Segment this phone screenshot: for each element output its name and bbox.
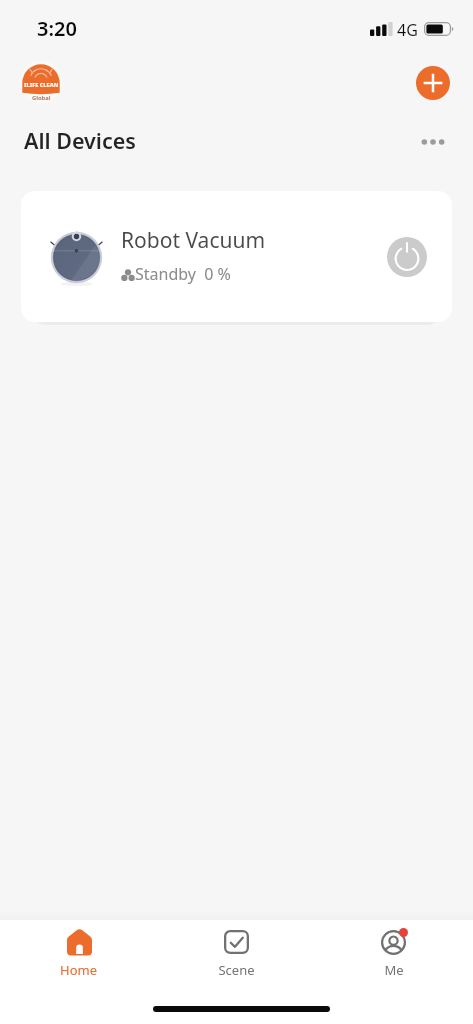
button[interactable]: Add device — [416, 66, 450, 100]
staticText: Me — [384, 961, 404, 979]
staticText: Home — [60, 961, 97, 979]
button[interactable]: Power — [387, 237, 427, 277]
button[interactable]: Home — [0, 920, 157, 979]
staticText: 4G — [397, 19, 418, 41]
staticText: All Devices — [24, 126, 136, 155]
staticText: ILIFE CLEAN — [24, 81, 59, 89]
staticText: Scene — [218, 961, 255, 979]
button[interactable]: Robot Vacuum — [21, 191, 452, 322]
staticText: 3:20 — [37, 15, 77, 42]
staticText: Global — [32, 94, 51, 102]
button[interactable]: Me — [315, 920, 473, 979]
button[interactable]: Scene — [157, 920, 315, 979]
button[interactable]: More options — [413, 124, 453, 160]
staticText: Robot Vacuum — [121, 226, 266, 255]
staticText: Standby 0 % — [135, 263, 231, 285]
